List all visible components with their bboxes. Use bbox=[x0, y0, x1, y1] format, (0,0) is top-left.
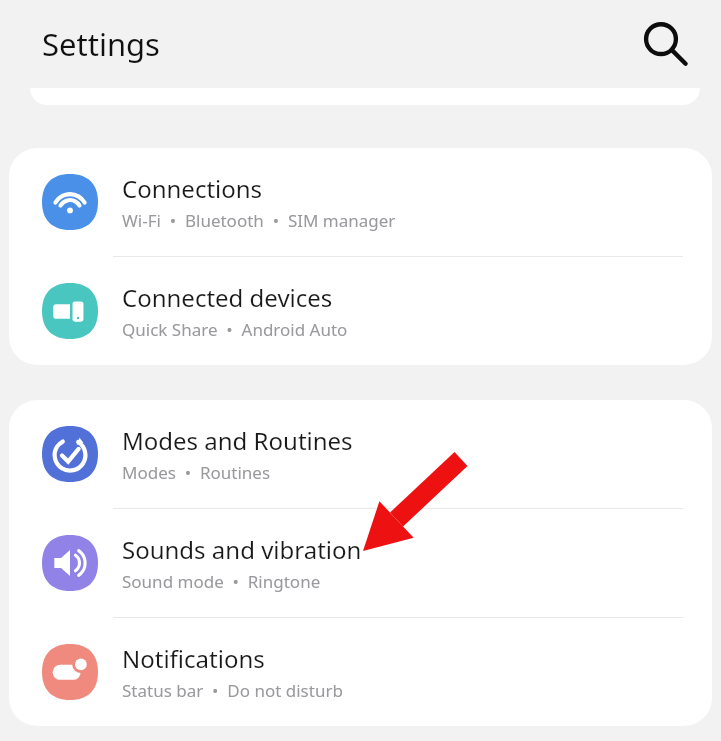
staticText: Status bar • Do not disturb bbox=[122, 679, 343, 702]
staticText: Sound mode • Ringtone bbox=[122, 570, 321, 593]
staticText: Connections bbox=[122, 172, 263, 205]
staticText: Modes and Routines bbox=[122, 424, 353, 457]
staticText: Notifications bbox=[122, 642, 265, 675]
button[interactable]: Connected devices bbox=[9, 257, 712, 365]
button[interactable]: Connections bbox=[9, 148, 712, 257]
staticText: Modes • Routines bbox=[122, 461, 271, 484]
staticText: Connected devices bbox=[122, 281, 333, 314]
staticText: Sounds and vibration bbox=[122, 533, 362, 566]
staticText: Quick Share • Android Auto bbox=[122, 318, 348, 341]
button[interactable]: Modes and Routines bbox=[9, 400, 712, 509]
staticText: Wi-Fi • Bluetooth • SIM manager bbox=[122, 209, 396, 232]
button[interactable]: Search bbox=[629, 10, 693, 74]
button[interactable]: Sounds and vibration bbox=[9, 509, 712, 618]
button[interactable]: Notifications bbox=[9, 618, 712, 726]
staticText: Settings bbox=[42, 23, 160, 65]
